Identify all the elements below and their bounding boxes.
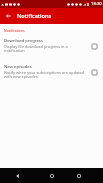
button[interactable]: New episodes	[0, 59, 103, 85]
button[interactable]: Toggle setting	[87, 39, 101, 53]
button[interactable]: Recent apps	[66, 168, 92, 183]
button[interactable]: Toggle setting	[87, 65, 101, 79]
button[interactable]: Download progress	[0, 33, 103, 59]
staticText: New episodes	[4, 64, 32, 70]
button[interactable]: Home	[39, 168, 65, 183]
button[interactable]: Back	[0, 168, 34, 183]
staticText: Display file download progress in a noti…	[4, 44, 85, 54]
staticText: 18:30	[91, 1, 102, 7]
staticText: Notify when your subscriptions are updat…	[4, 70, 85, 80]
staticText: Notifications	[4, 28, 25, 33]
staticText: Notifications	[17, 12, 52, 20]
staticText: Download progress	[4, 38, 43, 44]
button[interactable]: Navigate up	[0, 8, 16, 24]
